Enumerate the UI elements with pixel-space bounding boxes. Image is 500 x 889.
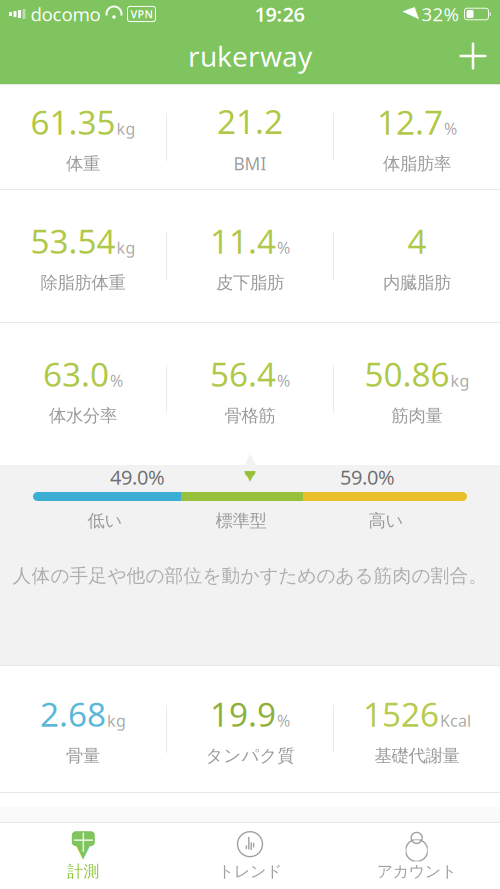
- staticText: VPN: [130, 7, 152, 21]
- staticText: 低い: [87, 510, 122, 531]
- staticText: 除脂肪体重: [40, 272, 125, 293]
- staticText: 皮下脂肪: [216, 272, 284, 293]
- staticText: 内臓脂肪: [383, 272, 451, 293]
- staticText: 1526: [363, 692, 439, 736]
- button[interactable]: 🛡: [0, 824, 167, 888]
- staticText: rukerway: [188, 37, 312, 75]
- staticText: トレンド: [218, 862, 282, 881]
- staticText: 12.7: [377, 100, 443, 144]
- staticText: kg: [107, 710, 126, 731]
- staticText: ◥: [403, 4, 416, 24]
- staticText: 61.35: [30, 100, 115, 144]
- staticText: ▾: [246, 467, 254, 486]
- staticText: 56.4: [210, 352, 276, 396]
- staticText: タンパク質: [205, 745, 294, 766]
- button[interactable]: アカウント: [333, 824, 500, 888]
- staticText: %: [444, 118, 457, 139]
- staticText: 体水分率: [49, 405, 117, 426]
- staticText: 19:26: [254, 1, 304, 27]
- staticText: 50.86: [364, 352, 449, 396]
- staticText: 63.0: [43, 352, 109, 396]
- staticText: 11.4: [210, 219, 276, 263]
- staticText: ▼: [72, 831, 94, 863]
- staticText: アカウント: [377, 862, 457, 881]
- button[interactable]: トレンド: [167, 824, 333, 888]
- staticText: 標準型: [215, 510, 266, 531]
- staticText: 人体の手足や他の部位を動かすためのある筋肉の割合。: [12, 564, 487, 587]
- staticText: 21.2: [217, 99, 283, 143]
- staticText: 2.68: [40, 692, 106, 736]
- staticText: %: [277, 237, 290, 258]
- staticText: kg: [116, 118, 135, 139]
- staticText: %: [277, 710, 290, 731]
- staticText: 筋肉量: [391, 405, 442, 426]
- staticText: 計測: [67, 862, 99, 881]
- staticText: %: [110, 370, 123, 391]
- staticText: %: [277, 370, 290, 391]
- staticText: ▲: [241, 448, 258, 473]
- staticText: 体脂肪率: [383, 153, 451, 174]
- staticText: BMI: [233, 152, 266, 175]
- staticText: 4: [407, 219, 426, 263]
- staticText: Kcal: [440, 710, 471, 731]
- staticText: 59.0%: [340, 464, 395, 490]
- staticText: 基礎代謝量: [374, 745, 459, 766]
- staticText: 体重: [66, 153, 100, 174]
- staticText: 骨格筋: [224, 405, 275, 426]
- staticText: 高い: [368, 510, 403, 531]
- staticText: docomo: [30, 2, 100, 26]
- staticText: kg: [450, 370, 469, 391]
- staticText: 骨量: [66, 745, 100, 766]
- staticText: 19.9: [210, 692, 276, 736]
- staticText: 49.0%: [110, 464, 165, 490]
- staticText: 53.54: [30, 219, 115, 263]
- button[interactable]: Add measurement: [446, 29, 500, 83]
- staticText: 32%: [421, 2, 459, 26]
- staticText: kg: [116, 237, 135, 258]
